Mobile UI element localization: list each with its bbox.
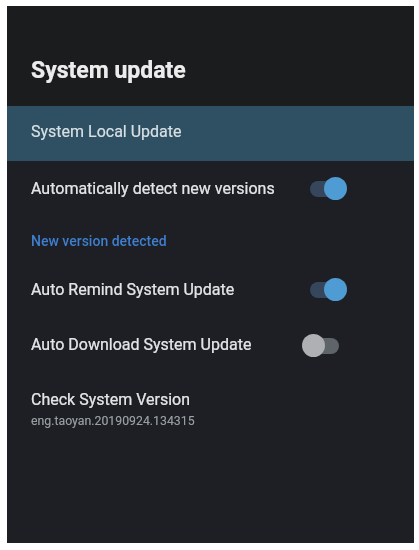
staticText: System Local Update xyxy=(31,122,182,141)
staticText: Auto Download System Update xyxy=(31,335,252,354)
staticText: Check System Version xyxy=(31,390,191,409)
staticText: Automatically detect new versions xyxy=(31,179,275,198)
button[interactable]: Auto Download System Update, off xyxy=(302,334,348,358)
button[interactable]: Auto Remind System Update, on xyxy=(302,278,348,302)
button[interactable]: System Local Update xyxy=(7,106,414,161)
staticText: Auto Remind System Update xyxy=(31,280,235,299)
staticText: System update xyxy=(31,57,186,84)
button[interactable]: New version detected xyxy=(7,218,414,260)
button[interactable]: Automatically detect new versions xyxy=(7,166,414,218)
staticText: New version detected xyxy=(31,233,167,249)
button[interactable]: Auto Download System Update xyxy=(7,314,414,368)
button[interactable]: Auto Remind System Update xyxy=(7,260,414,314)
button[interactable]: Check System Version xyxy=(7,368,414,430)
staticText: eng.taoyan.20190924.134315 xyxy=(31,414,195,428)
button[interactable]: Automatically detect new versions, on xyxy=(302,177,348,201)
